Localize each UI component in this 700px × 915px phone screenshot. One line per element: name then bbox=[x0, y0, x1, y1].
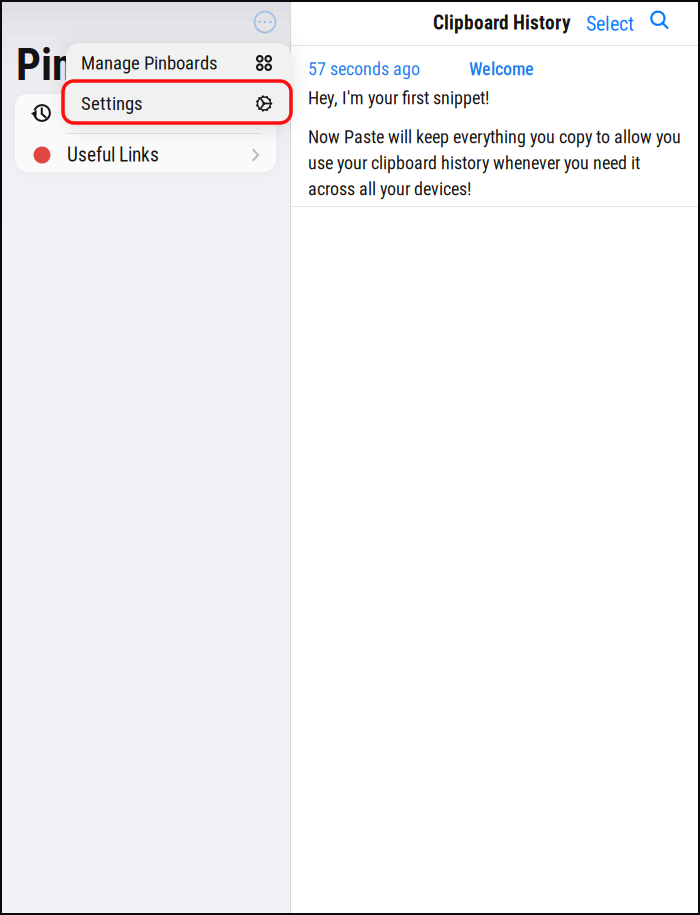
button[interactable]: More bbox=[247, 4, 283, 40]
staticText: Pinb bbox=[16, 39, 96, 91]
staticText: Clipboard History bbox=[433, 12, 571, 34]
staticText: Manage Pinboards bbox=[81, 52, 218, 74]
staticText: Useful Links bbox=[67, 144, 159, 166]
staticText: 57 seconds ago bbox=[308, 58, 420, 80]
button[interactable]: Search bbox=[643, 4, 677, 38]
button[interactable]: Manage Pinboards bbox=[66, 43, 291, 83]
staticText: Now Paste will keep everything you copy … bbox=[308, 126, 681, 148]
staticText: Hey, I'm your first snippet! bbox=[308, 87, 489, 109]
button[interactable]: Settings bbox=[66, 83, 291, 124]
staticText: across all your devices! bbox=[308, 178, 471, 200]
staticText: Welcome bbox=[469, 58, 534, 80]
staticText: History bbox=[67, 102, 122, 124]
button[interactable]: Useful Links bbox=[15, 134, 276, 176]
staticText: use your clipboard history whenever you … bbox=[308, 152, 640, 174]
button[interactable]: History bbox=[15, 94, 276, 132]
button[interactable]: Select bbox=[580, 7, 640, 41]
staticText: Settings bbox=[81, 93, 143, 114]
staticText: Select bbox=[586, 12, 634, 36]
